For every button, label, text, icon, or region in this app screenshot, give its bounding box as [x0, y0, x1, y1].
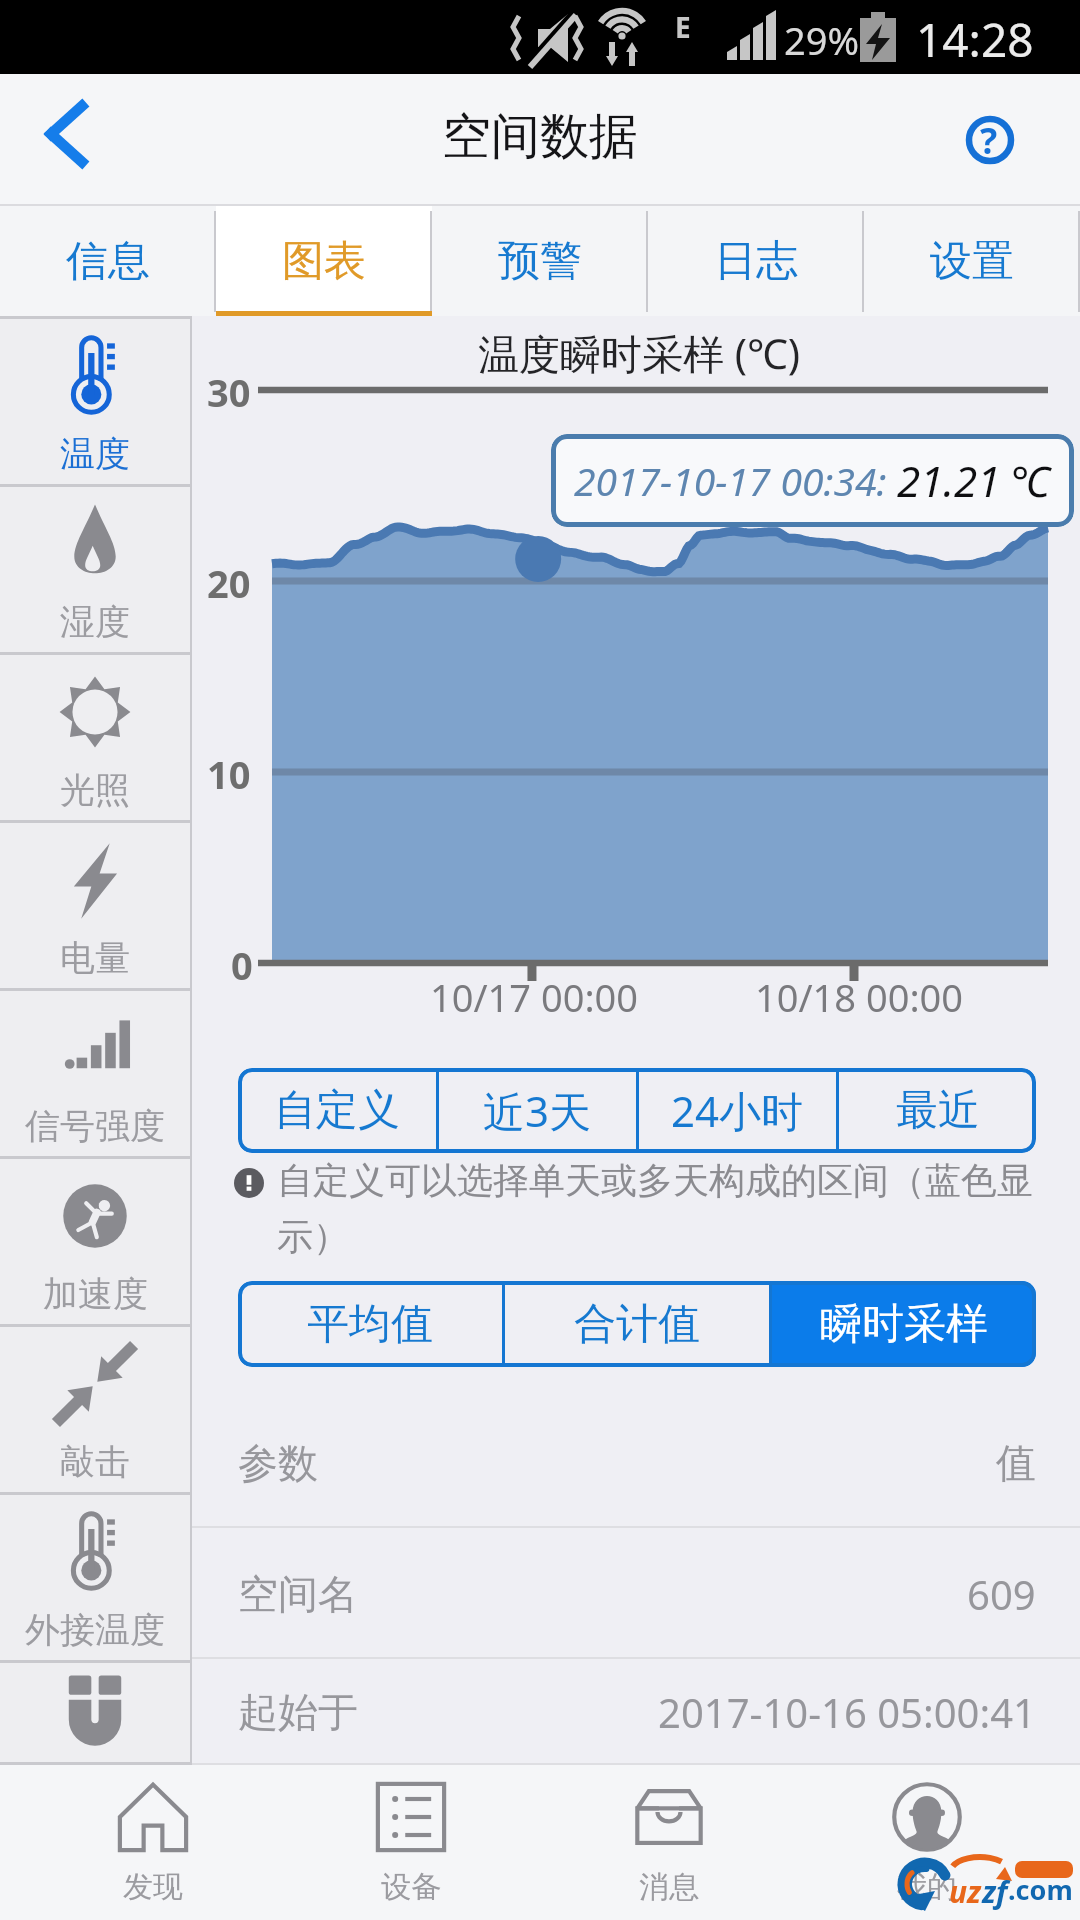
staticText: 设备 — [381, 1868, 441, 1906]
staticText: 近3天 — [483, 1082, 592, 1139]
button[interactable]: 电量 — [0, 823, 190, 991]
button[interactable]: 加速度 — [0, 1159, 190, 1327]
button[interactable]: Help — [930, 82, 1050, 202]
staticText: 20 — [207, 557, 251, 609]
button[interactable]: 信息 — [0, 206, 216, 316]
staticText: 最近 — [896, 1084, 980, 1137]
staticText: 起始于 — [238, 1687, 358, 1737]
staticText: 合计值 — [574, 1298, 700, 1351]
button[interactable]: 瞬时采样 — [772, 1281, 1036, 1367]
button[interactable]: 近3天 — [439, 1068, 636, 1153]
staticText: 平均值 — [307, 1298, 433, 1351]
staticText: 值 — [996, 1438, 1036, 1488]
button[interactable]: 起始于 — [192, 1659, 1080, 1765]
button[interactable]: 温度 — [0, 319, 190, 487]
staticText: 空间数据 — [442, 106, 638, 168]
button[interactable]: Back — [0, 74, 132, 206]
staticText: 温度 — [60, 432, 130, 476]
staticText: 信息 — [66, 235, 150, 288]
staticText: 609 — [967, 1567, 1036, 1621]
staticText: 空间名 — [238, 1569, 358, 1619]
staticText: 设置 — [930, 235, 1014, 288]
staticText: 14:28 — [916, 8, 1034, 71]
staticText: 消息 — [639, 1868, 699, 1906]
button[interactable]: 空间名 — [192, 1528, 1080, 1659]
staticText: .com — [1008, 1871, 1073, 1908]
button[interactable]: 图表 — [216, 206, 432, 316]
staticText: 温度瞬时采样 (℃) — [478, 325, 801, 381]
staticText: 电量 — [60, 936, 130, 980]
button[interactable]: 自定义 — [238, 1068, 436, 1153]
button[interactable]: 平均值 — [238, 1281, 502, 1367]
staticText: ? — [980, 116, 998, 165]
button[interactable]: 消息 — [540, 1765, 798, 1920]
staticText: 外接温度 — [25, 1608, 165, 1652]
button[interactable]: 合计值 — [505, 1281, 769, 1367]
button[interactable]: 设置 — [864, 206, 1080, 316]
staticText: 图表 — [282, 235, 366, 288]
staticText: 光照 — [60, 768, 130, 812]
button[interactable]: 敲击 — [0, 1327, 190, 1495]
staticText: 0 — [231, 939, 253, 991]
button[interactable]: 发现 — [24, 1765, 282, 1920]
button[interactable]: 预警 — [432, 206, 648, 316]
button[interactable]: 24小时 — [639, 1068, 836, 1153]
staticText: 加速度 — [43, 1272, 148, 1316]
button[interactable]: 日志 — [648, 206, 864, 316]
staticText: zf — [982, 1871, 1008, 1912]
staticText: 自定义可以选择单天或多天构成的区间（蓝色显示） — [277, 1158, 1042, 1260]
staticText: 预警 — [498, 235, 582, 288]
staticText: 敲击 — [60, 1440, 130, 1484]
staticText: E — [675, 8, 691, 46]
staticText: 29% — [784, 14, 860, 66]
staticText: 30 — [207, 366, 251, 418]
staticText: 2017-10-16 05:00:41 — [658, 1685, 1036, 1739]
button[interactable]: 参数 — [192, 1397, 1080, 1528]
staticText: 瞬时采样 — [820, 1298, 988, 1351]
button[interactable]: 湿度 — [0, 487, 190, 655]
button[interactable]: 设备 — [282, 1765, 540, 1920]
staticText: 自定义 — [274, 1084, 400, 1137]
button[interactable]: 最近 — [839, 1068, 1036, 1153]
button[interactable]: 光照 — [0, 655, 190, 823]
staticText: 日志 — [714, 235, 798, 288]
staticText: 发现 — [123, 1868, 183, 1906]
button[interactable]: 我的 — [798, 1765, 1056, 1920]
staticText: uz — [949, 1871, 982, 1912]
staticText: 24小时 — [671, 1082, 804, 1139]
staticText: 10 — [207, 748, 251, 800]
staticText: 21.21 ℃ — [897, 452, 1051, 509]
button[interactable]: 磁场 — [0, 1663, 190, 1765]
button[interactable]: 信号强度 — [0, 991, 190, 1159]
staticText: 2017-10-17 00:34: — [574, 454, 897, 507]
staticText: 湿度 — [60, 600, 130, 644]
button[interactable]: 外接温度 — [0, 1495, 190, 1663]
staticText: 10/17 00:00 — [430, 971, 639, 1023]
staticText: 参数 — [238, 1438, 318, 1488]
staticText: 我的 — [897, 1868, 957, 1906]
staticText: 10/18 00:00 — [755, 971, 964, 1023]
staticText: 信号强度 — [25, 1104, 165, 1148]
